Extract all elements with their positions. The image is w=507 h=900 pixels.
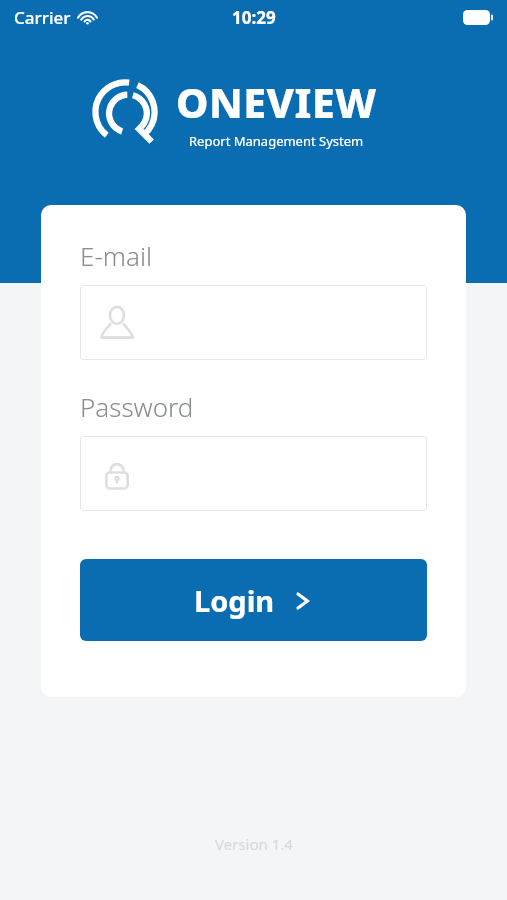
- staticText: Login: [194, 581, 275, 620]
- staticText: 10:29: [232, 6, 276, 29]
- staticText: Carrier: [14, 6, 71, 29]
- staticText: Report Management System: [189, 132, 364, 150]
- staticText: ONEVIEW: [176, 74, 377, 130]
- button[interactable]: Login: [80, 559, 427, 641]
- staticText: E-mail: [80, 238, 152, 273]
- button[interactable]: Password input: [80, 436, 427, 511]
- staticText: Version 1.4: [215, 834, 293, 854]
- staticText: Password: [80, 389, 194, 424]
- button[interactable]: E-mail input: [80, 285, 427, 360]
